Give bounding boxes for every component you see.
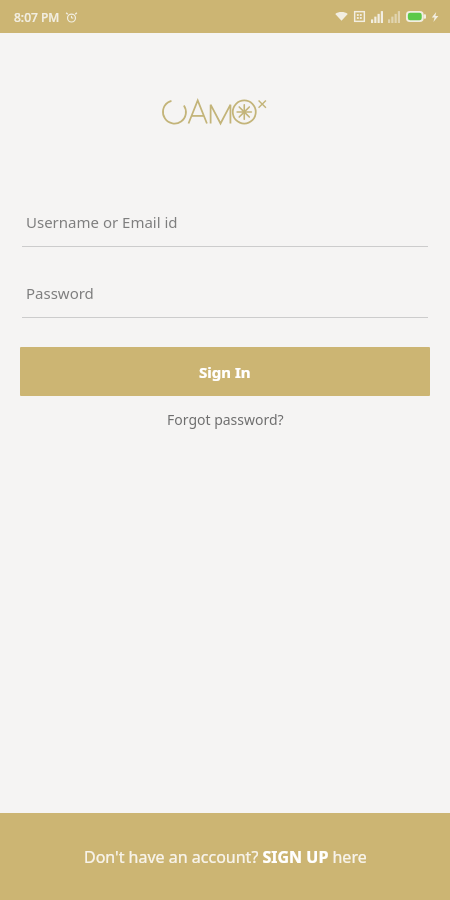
staticText: Don't have an account? SIGN UP here — [84, 846, 367, 868]
staticText: Forgot password? — [167, 410, 284, 429]
button[interactable]: Password — [0, 268, 450, 318]
staticText: Username or Email id — [26, 212, 178, 232]
staticText: Sign In — [199, 362, 251, 382]
button[interactable]: Username or Email id — [0, 197, 450, 247]
staticText: Password — [26, 283, 94, 303]
button[interactable]: Sign In — [20, 347, 430, 396]
staticText: 8:07 PM — [14, 9, 60, 25]
button[interactable]: Forgot password? — [155, 405, 296, 434]
button[interactable]: Don't have an account? SIGN UP here — [0, 813, 450, 900]
